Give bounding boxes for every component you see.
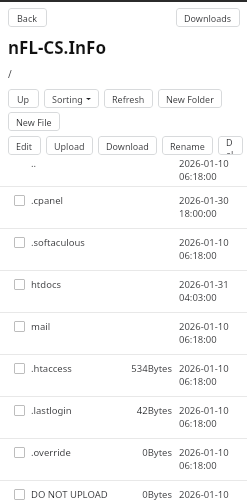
staticText: 2026-01-10	[179, 488, 229, 500]
staticText: 0Bytes	[128, 446, 172, 459]
staticText: 2026-01-10	[179, 446, 229, 459]
staticText: Delete	[226, 138, 239, 157]
staticText: Edit	[16, 142, 33, 154]
button[interactable]: Select item	[0, 313, 247, 354]
staticText: /	[8, 67, 12, 81]
button[interactable]: Sorting	[44, 89, 99, 108]
staticText: .override	[31, 446, 128, 459]
button[interactable]: Select item	[14, 321, 25, 332]
button[interactable]: New Folder	[158, 89, 222, 108]
staticText: ..	[31, 157, 128, 170]
staticText: Download	[106, 142, 149, 154]
button[interactable]: Select item	[14, 405, 25, 416]
staticText: DO NOT UPLOAD FILES HERE	[31, 488, 128, 500]
button[interactable]: Refresh	[104, 89, 153, 108]
button[interactable]: Select item	[14, 447, 25, 458]
staticText: 06:18:00	[179, 375, 217, 388]
button[interactable]: Download	[98, 138, 157, 157]
staticText: Up	[17, 93, 30, 105]
button[interactable]: Downloads	[176, 8, 240, 27]
button[interactable]: ..	[0, 157, 247, 186]
button[interactable]: Select item	[0, 229, 247, 270]
button[interactable]: Select item	[0, 355, 247, 396]
staticText: .cpanel	[31, 194, 128, 207]
button[interactable]: Select item	[0, 439, 247, 480]
button[interactable]: Select item	[14, 237, 25, 248]
staticText: Upload	[54, 140, 85, 152]
staticText: 2026-01-10	[179, 157, 229, 170]
staticText: 06:18:00	[179, 249, 217, 262]
button[interactable]: Select item	[0, 481, 247, 500]
button[interactable]: Edit	[8, 136, 41, 155]
staticText: 2026-01-30	[179, 194, 229, 207]
staticText: 42Bytes	[128, 404, 172, 417]
button[interactable]: Select item	[14, 279, 25, 290]
button[interactable]: Select item	[14, 195, 25, 206]
staticText: 18:00:00	[179, 207, 217, 220]
button[interactable]: Select item	[14, 489, 25, 500]
staticText: Downloads	[184, 12, 232, 24]
staticText: 0Bytes	[128, 488, 172, 500]
staticText: Download	[106, 140, 149, 152]
staticText: mail	[31, 320, 128, 333]
button[interactable]: New File	[8, 112, 60, 131]
staticText: .lastlogin	[31, 404, 128, 417]
staticText: Edit	[16, 140, 33, 152]
button[interactable]: Up	[8, 89, 39, 108]
staticText: New Folder	[166, 93, 214, 105]
button[interactable]: Select item	[0, 271, 247, 312]
staticText: Rename	[170, 140, 205, 152]
staticText: nFL-CS.InFo	[8, 36, 107, 59]
button[interactable]: Upload	[46, 138, 93, 157]
staticText: 06:18:00	[179, 417, 217, 430]
button[interactable]: Back	[8, 8, 47, 27]
button[interactable]: Select item	[14, 363, 25, 374]
staticText: 2026-01-10	[179, 320, 229, 333]
staticText: Refresh	[112, 93, 145, 105]
staticText: 06:18:00	[179, 459, 217, 472]
button[interactable]: Select item	[0, 187, 247, 228]
staticText: Upload	[54, 142, 85, 154]
button[interactable]: Upload	[46, 136, 93, 155]
button[interactable]: Download	[98, 136, 157, 155]
button[interactable]: Delete	[218, 136, 243, 155]
staticText: 534Bytes	[128, 362, 172, 375]
staticText: 2026-01-10	[179, 236, 229, 249]
staticText: .htaccess	[31, 362, 128, 375]
button[interactable]: Rename	[162, 136, 213, 155]
staticText: 2026-01-10	[179, 362, 229, 375]
staticText: 2026-01-10	[179, 404, 229, 417]
staticText: 04:03:00	[179, 291, 217, 304]
staticText: 06:18:00	[179, 333, 217, 346]
staticText: New File	[16, 116, 52, 128]
staticText: Rename	[170, 142, 205, 154]
button[interactable]: Select item	[0, 397, 247, 438]
staticText: htdocs	[31, 278, 128, 291]
staticText: Back	[17, 12, 38, 24]
staticText: Delete	[226, 136, 235, 155]
staticText: .softaculous	[31, 236, 128, 249]
button[interactable]: Edit	[8, 138, 41, 157]
button[interactable]: Rename	[162, 138, 213, 157]
button[interactable]: Delete	[218, 138, 247, 157]
staticText: Sorting	[52, 93, 83, 105]
staticText: 06:18:00	[179, 170, 217, 183]
staticText: 2026-01-31	[179, 278, 229, 291]
